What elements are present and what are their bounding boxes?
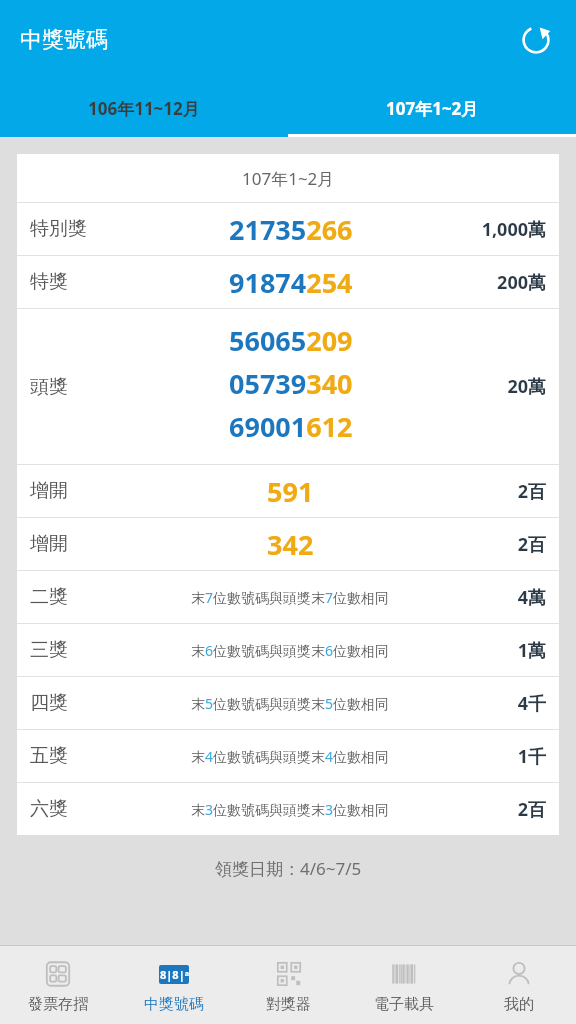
button[interactable]: 106年11~12月	[0, 79, 288, 137]
staticText: 特獎	[30, 270, 127, 294]
staticText: 20萬	[507, 374, 546, 399]
staticText: 領獎日期：4/6~7/5	[215, 857, 362, 880]
button[interactable]: 我的	[461, 946, 576, 1024]
button[interactable]: 特別獎	[17, 203, 559, 255]
staticText: 對獎器	[266, 995, 311, 1014]
button[interactable]: 107年1~2月	[288, 79, 576, 137]
staticText: 8|8|ᵃ	[160, 967, 189, 982]
staticText: 1萬	[517, 638, 546, 663]
button[interactable]: 增開	[17, 465, 559, 517]
staticText: 342	[267, 526, 314, 563]
staticText: 2百	[517, 532, 546, 557]
button[interactable]: 8|8|ᵃ	[116, 946, 231, 1024]
staticText: 三獎	[30, 638, 127, 662]
staticText: 591	[267, 473, 314, 510]
staticText: 106年11~12月	[88, 97, 200, 120]
staticText: 2百	[517, 479, 546, 504]
button[interactable]: 二獎	[17, 571, 559, 623]
staticText: 4千	[517, 691, 546, 716]
staticText: 200萬	[497, 270, 546, 295]
staticText: 56065209	[229, 322, 353, 359]
button[interactable]: 三獎	[17, 624, 559, 676]
staticText: 頭獎	[30, 375, 127, 399]
button[interactable]: 四獎	[17, 677, 559, 729]
button[interactable]: 六獎	[17, 783, 559, 835]
staticText: 四獎	[30, 691, 127, 715]
staticText: 電子載具	[374, 995, 434, 1014]
staticText: 107年1~2月	[242, 167, 335, 190]
button[interactable]: 增開	[17, 518, 559, 570]
staticText: 2百	[517, 797, 546, 822]
button[interactable]: 對獎器	[231, 946, 346, 1024]
staticText: 末3位數號碼與頭獎末3位數相同	[191, 800, 390, 819]
staticText: 增開	[30, 532, 127, 556]
staticText: 107年1~2月	[386, 97, 479, 120]
staticText: 4萬	[517, 585, 546, 610]
button[interactable]: 頭獎	[17, 309, 559, 464]
staticText: 六獎	[30, 797, 127, 821]
staticText: 五獎	[30, 744, 127, 768]
staticText: 1,000萬	[481, 217, 546, 242]
staticText: 1千	[517, 744, 546, 769]
button[interactable]: 特獎	[17, 256, 559, 308]
staticText: 發票存摺	[28, 995, 88, 1014]
staticText: 特別獎	[30, 217, 127, 241]
staticText: 末4位數號碼與頭獎末4位數相同	[191, 747, 390, 766]
button[interactable]: Refresh	[514, 18, 558, 62]
staticText: 05739340	[229, 365, 353, 402]
staticText: 91874254	[229, 264, 353, 301]
staticText: 增開	[30, 479, 127, 503]
staticText: 二獎	[30, 585, 127, 609]
staticText: 末5位數號碼與頭獎末5位數相同	[191, 694, 390, 713]
staticText: 末7位數號碼與頭獎末7位數相同	[191, 588, 390, 607]
staticText: 中獎號碼	[20, 26, 108, 54]
staticText: 中獎號碼	[144, 995, 204, 1014]
staticText: 我的	[504, 995, 534, 1014]
staticText: 21735266	[229, 211, 353, 248]
button[interactable]: 電子載具	[346, 946, 461, 1024]
button[interactable]: 五獎	[17, 730, 559, 782]
staticText: 末6位數號碼與頭獎末6位數相同	[191, 641, 390, 660]
button[interactable]: 發票存摺	[0, 946, 116, 1024]
staticText: 69001612	[229, 408, 353, 445]
